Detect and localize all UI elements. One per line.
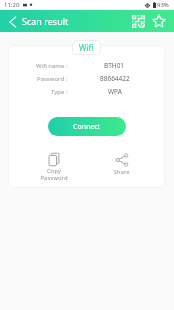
button[interactable]: Favorite bbox=[148, 10, 170, 32]
button[interactable]: Connect bbox=[48, 117, 126, 136]
button[interactable]: Share bbox=[107, 151, 136, 178]
staticText: BTH01 bbox=[104, 61, 125, 70]
staticText: Wifi name : bbox=[36, 62, 68, 70]
staticText: Scan result bbox=[22, 15, 69, 27]
button[interactable]: Copy Password bbox=[34, 151, 74, 184]
staticText: 11:20 bbox=[4, 1, 20, 9]
staticText: Copy Password bbox=[40, 167, 68, 182]
staticText: WPA bbox=[108, 87, 122, 96]
staticText: Share bbox=[113, 168, 130, 176]
button[interactable]: QR code bbox=[128, 10, 148, 32]
staticText: Wifi bbox=[79, 42, 94, 53]
staticText: Connect bbox=[73, 122, 101, 132]
staticText: 93% bbox=[157, 1, 169, 9]
staticText: Password : bbox=[37, 75, 68, 83]
staticText: Type : bbox=[51, 88, 68, 96]
button[interactable]: Back bbox=[0, 10, 22, 32]
staticText: 88664422 bbox=[100, 74, 130, 83]
